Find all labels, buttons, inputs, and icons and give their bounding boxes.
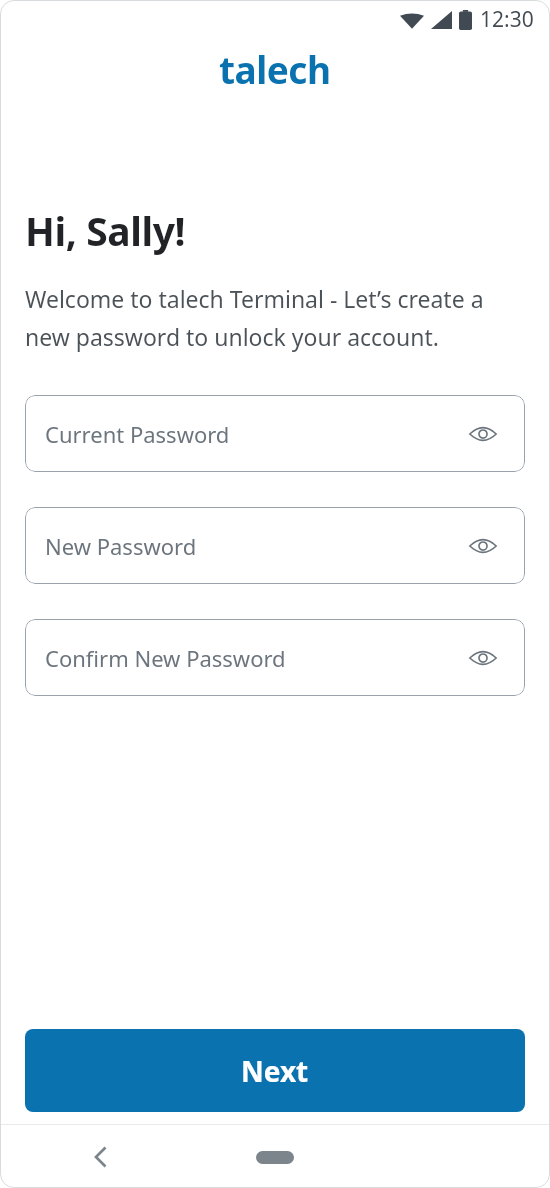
button[interactable]: Back — [78, 1134, 124, 1180]
staticText: Hi, Sally! — [25, 204, 186, 257]
button[interactable]: Show password — [465, 640, 501, 676]
staticText: Welcome to talech Terminal - Let’s creat… — [25, 283, 484, 353]
button[interactable]: Show password — [465, 416, 501, 452]
staticText: Next — [241, 1052, 309, 1090]
button[interactable]: Home — [245, 1140, 305, 1174]
staticText: Current Password — [45, 419, 230, 449]
button[interactable]: Next — [25, 1029, 525, 1112]
button[interactable]: Current Password — [25, 395, 525, 472]
button[interactable]: Confirm New Password — [25, 619, 525, 696]
staticText: 12:30 — [480, 5, 534, 34]
staticText: New Password — [45, 531, 197, 561]
button[interactable]: Show password — [465, 528, 501, 564]
staticText: talech — [219, 44, 331, 94]
button[interactable]: New Password — [25, 507, 525, 584]
staticText: Confirm New Password — [45, 643, 286, 673]
